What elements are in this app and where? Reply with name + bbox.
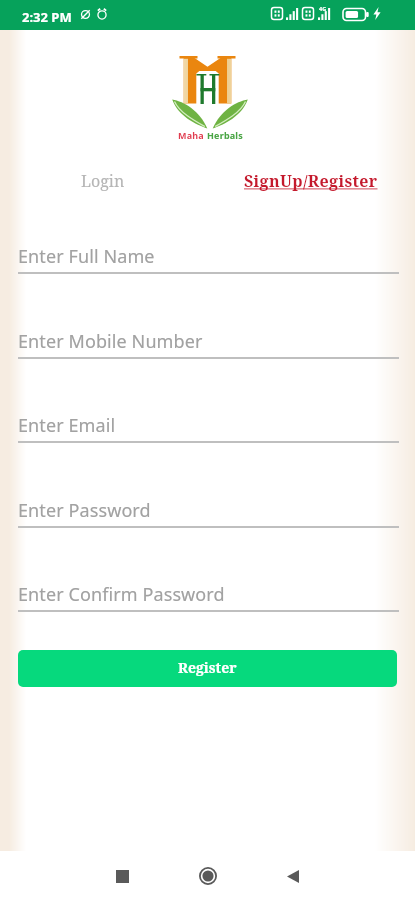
staticText: Herbals (207, 129, 243, 141)
staticText: 4G (319, 5, 327, 12)
button[interactable]: Enter Confirm Password (18, 577, 399, 612)
staticText: 2:32 PM (22, 8, 72, 26)
staticText: Enter Password (18, 498, 151, 523)
button[interactable]: Login (53, 163, 153, 199)
button[interactable]: Enter Mobile Number (18, 324, 399, 359)
staticText: Enter Full Name (18, 244, 155, 269)
button[interactable]: Enter Password (18, 493, 399, 528)
button[interactable]: Home (186, 857, 230, 895)
staticText: SignUp/Register (244, 170, 378, 192)
button[interactable]: Register (18, 650, 397, 687)
staticText: Maha (178, 129, 204, 141)
button[interactable]: Enter Email (18, 408, 399, 443)
button[interactable]: Enter Full Name (18, 239, 399, 274)
staticText: Login (81, 170, 125, 192)
staticText: Enter Confirm Password (18, 582, 225, 607)
button[interactable]: Recent apps (100, 857, 144, 895)
button[interactable]: SignUp/Register (235, 163, 387, 199)
staticText: Register (178, 658, 237, 677)
button[interactable]: Back (271, 857, 315, 895)
staticText: Enter Email (18, 413, 116, 438)
staticText: Enter Mobile Number (18, 329, 203, 354)
